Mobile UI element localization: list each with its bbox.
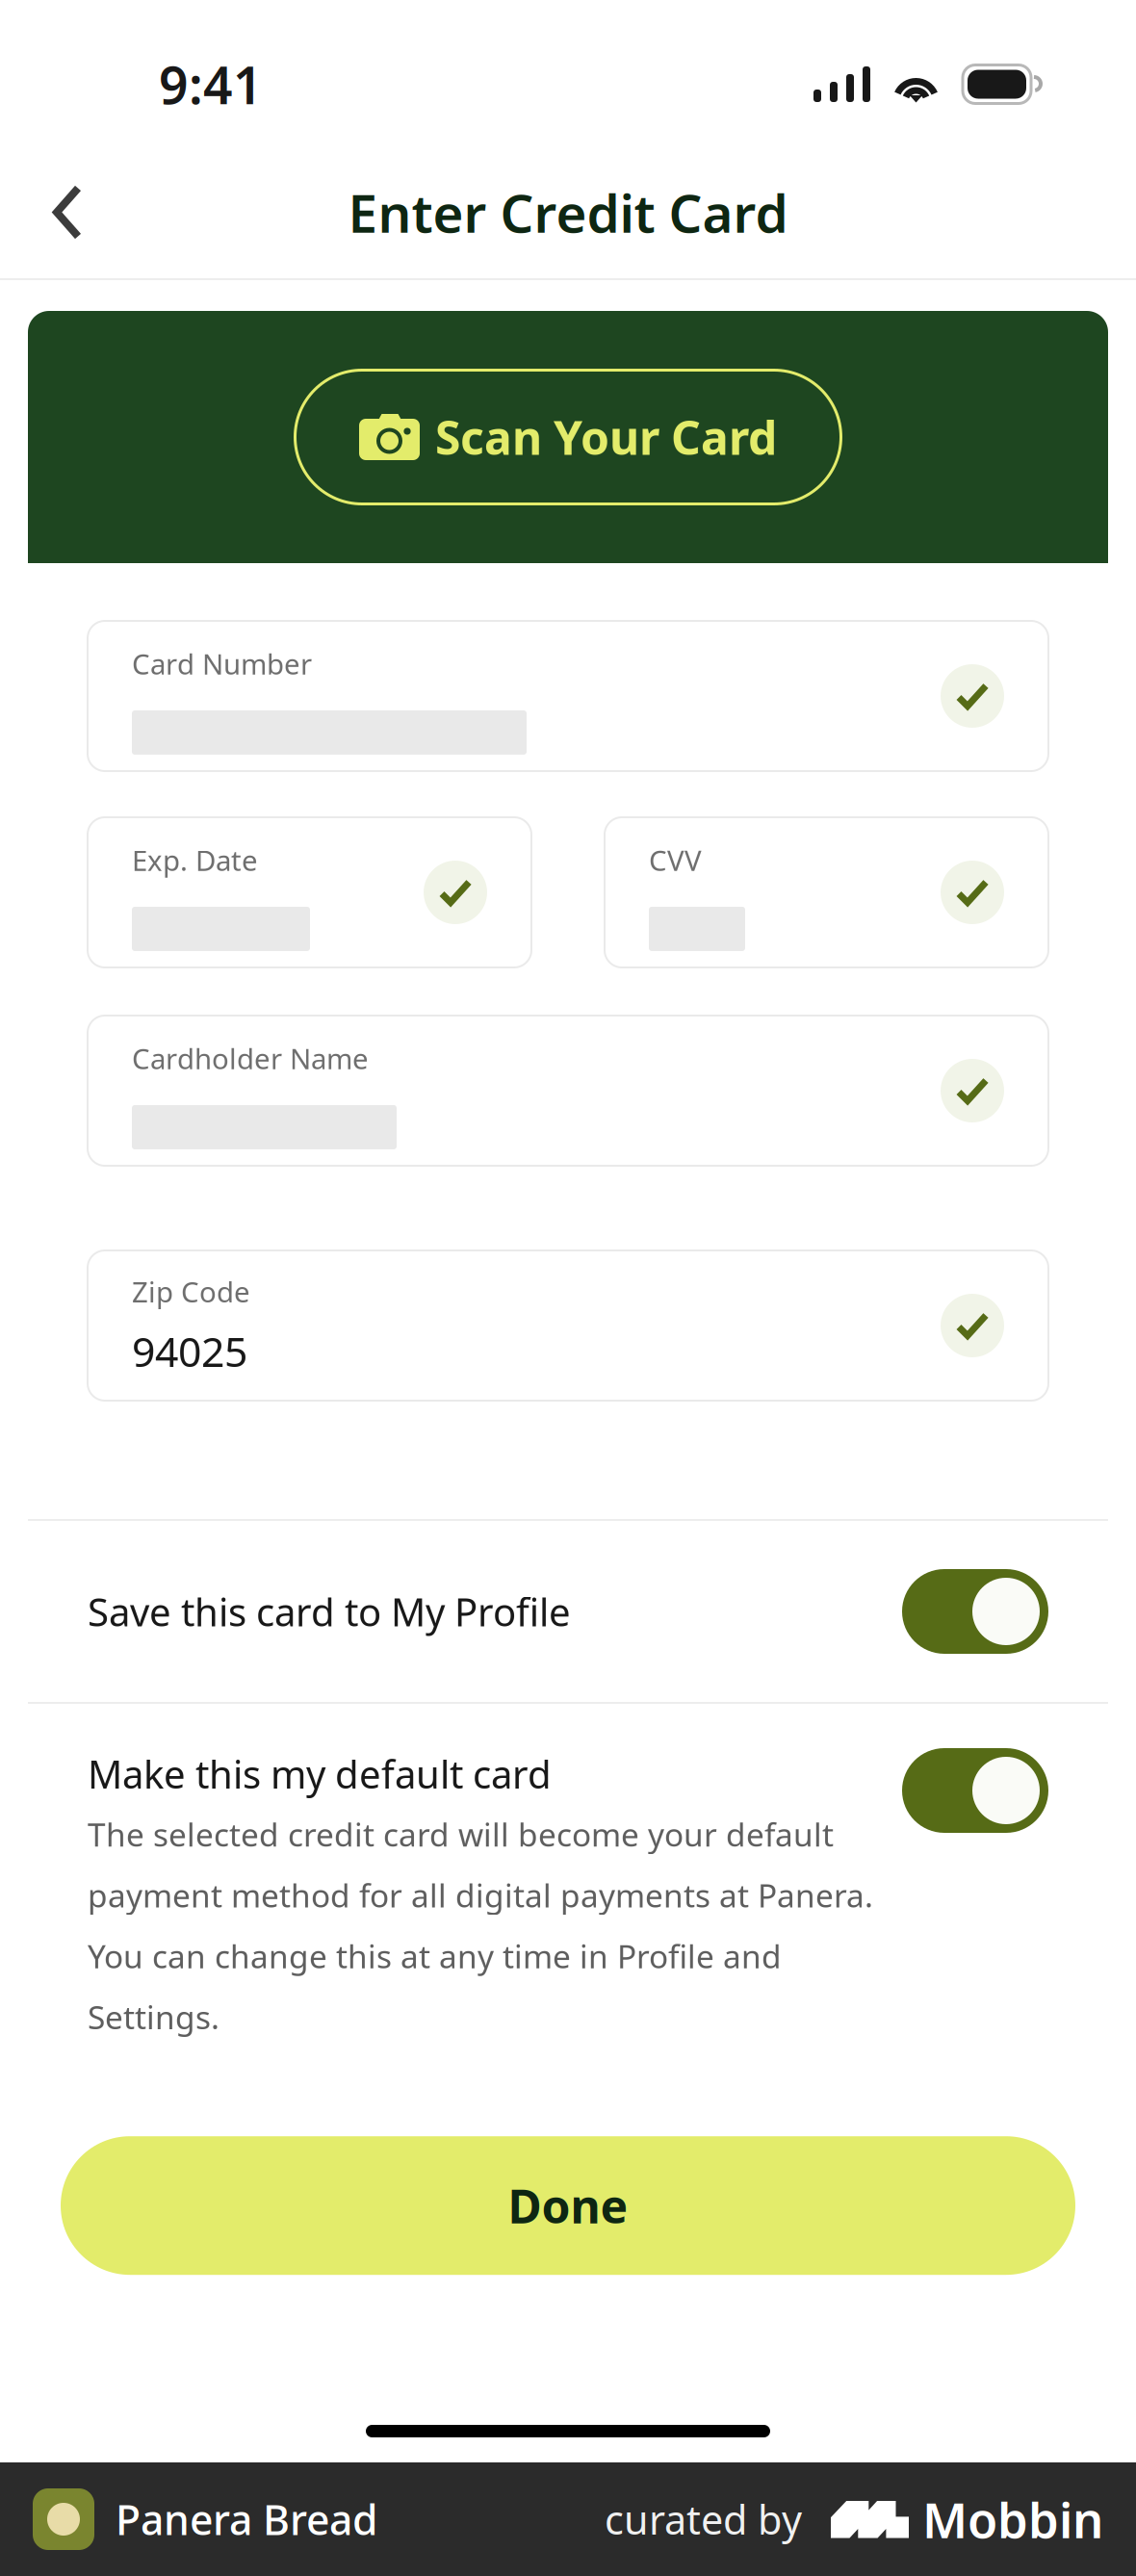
button[interactable]: Make this my default card [28, 1704, 1108, 2088]
staticText: Save this card to My Profile [88, 1586, 571, 1637]
button[interactable]: Done [61, 2136, 1075, 2275]
staticText: Scan Your Card [435, 406, 777, 468]
staticText: CVV [649, 841, 702, 879]
button[interactable]: Scan Your Card [295, 370, 841, 504]
staticText: Card Number [132, 645, 312, 683]
staticText: Make this my default card [88, 1748, 552, 1799]
staticText: 94025 [132, 1324, 247, 1378]
button[interactable]: Save this card to My Profile [28, 1521, 1108, 1702]
staticText: Mobbin [922, 2487, 1103, 2552]
button[interactable]: Back [17, 162, 117, 262]
staticText: 9:41 [159, 50, 263, 118]
staticText: Zip Code [132, 1273, 250, 1310]
staticText: Done [508, 2175, 628, 2236]
staticText: Panera Bread [116, 2492, 377, 2547]
staticText: The selected credit card will become you… [88, 1813, 873, 2038]
staticText: Enter Credit Card [348, 177, 788, 247]
staticText: Exp. Date [132, 841, 258, 879]
staticText: Cardholder Name [132, 1040, 369, 1077]
staticText: curated by [605, 2493, 802, 2546]
